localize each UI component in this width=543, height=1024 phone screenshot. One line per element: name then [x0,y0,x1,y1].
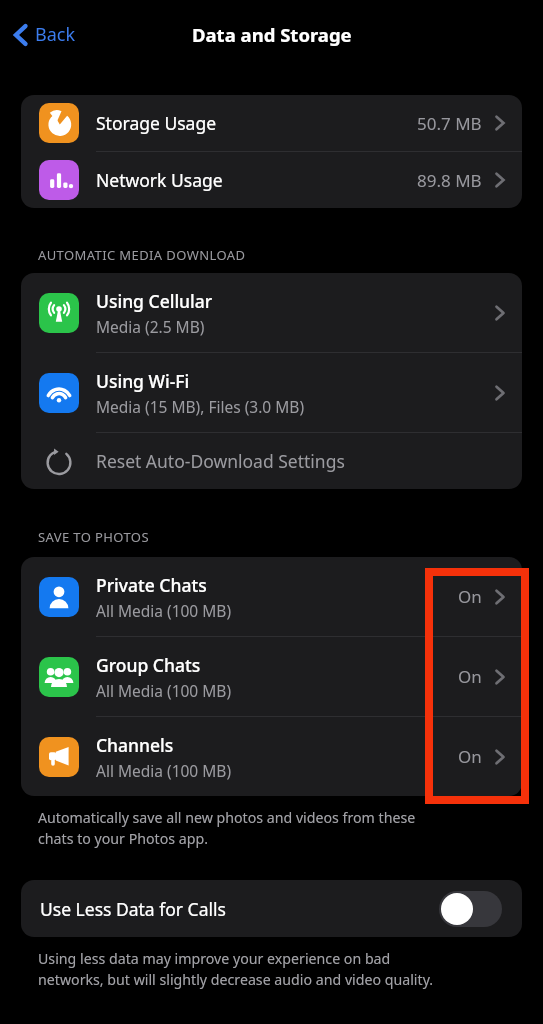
staticText: SAVE TO PHOTOS [38,528,149,546]
staticText: Using Wi-Fi [96,369,190,393]
staticText: Storage Usage [96,111,217,135]
staticText: On [458,665,482,688]
staticText: Group Chats [96,653,201,677]
staticText: Media (15 MB), Files (3.0 MB) [96,396,305,417]
staticText: Use Less Data for Calls [40,897,226,921]
staticText: Channels [96,733,174,757]
button[interactable]: Using Cellular [21,273,522,352]
button[interactable]: Back [8,16,82,53]
staticText: Automatically save all new photos and vi… [38,808,416,849]
staticText: On [458,745,482,768]
staticText: 89.8 MB [417,169,482,192]
button[interactable]: Using Wi-Fi [21,353,522,432]
staticText: Network Usage [96,168,223,192]
staticText: Private Chats [96,573,207,597]
staticText: 50.7 MB [417,112,482,135]
button[interactable]: Private Chats [21,557,522,636]
staticText: All Media (100 MB) [96,600,232,621]
staticText: On [458,585,482,608]
staticText: All Media (100 MB) [96,760,232,781]
button[interactable]: Use Less Data for Calls toggle [439,891,502,927]
button[interactable]: Channels [21,717,522,796]
staticText: Media (2.5 MB) [96,316,205,337]
button[interactable]: Use Less Data for Calls [21,880,522,937]
button[interactable]: Storage Usage [21,95,522,151]
button[interactable]: Network Usage [21,152,522,208]
staticText: Data and Storage [192,22,352,47]
button[interactable]: Reset Auto-Download Settings [21,433,522,489]
staticText: Back [35,22,76,47]
staticText: AUTOMATIC MEDIA DOWNLOAD [38,246,246,264]
staticText: All Media (100 MB) [96,680,232,701]
button[interactable]: Group Chats [21,637,522,716]
staticText: Reset Auto-Download Settings [96,449,345,473]
staticText: Using Cellular [96,289,213,313]
staticText: Using less data may improve your experie… [38,949,434,990]
